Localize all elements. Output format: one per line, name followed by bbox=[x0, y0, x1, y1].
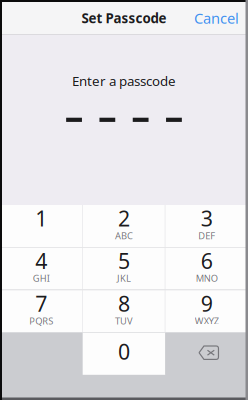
staticText: 0 bbox=[118, 337, 130, 366]
button[interactable]: 0 bbox=[83, 333, 165, 375]
staticText: JKL bbox=[117, 272, 131, 284]
staticText: PQRS bbox=[29, 315, 53, 327]
button[interactable]: 2 bbox=[83, 205, 165, 247]
button[interactable]: 3 bbox=[165, 205, 248, 247]
staticText: DEF bbox=[198, 229, 215, 242]
button[interactable]: Cancel bbox=[194, 7, 248, 27]
staticText: 4 bbox=[35, 247, 47, 275]
button[interactable]: 5 bbox=[83, 248, 165, 290]
staticText: 3 bbox=[201, 204, 213, 232]
staticText: Enter a passcode bbox=[72, 72, 176, 90]
staticText: 5 bbox=[118, 247, 130, 275]
staticText: 7 bbox=[35, 289, 47, 317]
staticText: GHI bbox=[33, 272, 50, 284]
button[interactable]: 6 bbox=[165, 248, 248, 290]
staticText: 8 bbox=[118, 289, 130, 317]
staticText: ABC bbox=[115, 229, 133, 242]
staticText: 6 bbox=[201, 247, 213, 275]
staticText: 1 bbox=[35, 204, 47, 232]
button[interactable]: 8 bbox=[83, 290, 165, 332]
staticText: Set Passcode bbox=[81, 9, 166, 27]
button[interactable]: 9 bbox=[165, 290, 248, 332]
staticText: WXYZ bbox=[195, 315, 219, 327]
staticText: MNO bbox=[196, 272, 218, 284]
staticText: 2 bbox=[118, 204, 130, 232]
staticText: 9 bbox=[201, 289, 213, 317]
button[interactable]: 1 bbox=[0, 205, 83, 247]
button[interactable]: 4 bbox=[0, 248, 83, 290]
button[interactable]: Delete bbox=[165, 333, 248, 375]
staticText: TUV bbox=[115, 315, 133, 327]
staticText: Cancel bbox=[194, 8, 239, 28]
button[interactable]: 7 bbox=[0, 290, 83, 332]
